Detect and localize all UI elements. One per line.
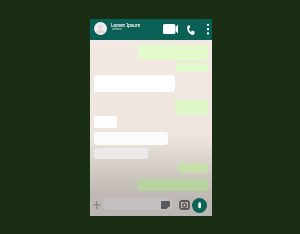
- button[interactable]: Video call: [163, 24, 178, 34]
- button[interactable]: Record voice message: [192, 198, 207, 213]
- staticText: Lorem Ipsum: [111, 22, 141, 28]
- staticText: online: [112, 26, 122, 31]
- button[interactable]: Attach: [93, 201, 101, 209]
- button[interactable]: Voice call: [187, 25, 195, 35]
- button[interactable]: [94, 116, 117, 128]
- button[interactable]: Type a message: [102, 198, 173, 210]
- button[interactable]: Contact profile photo: [94, 22, 107, 35]
- button[interactable]: [178, 163, 208, 173]
- button[interactable]: Camera: [180, 201, 189, 209]
- button[interactable]: Stickers: [161, 201, 170, 209]
- button[interactable]: More options: [205, 23, 211, 36]
